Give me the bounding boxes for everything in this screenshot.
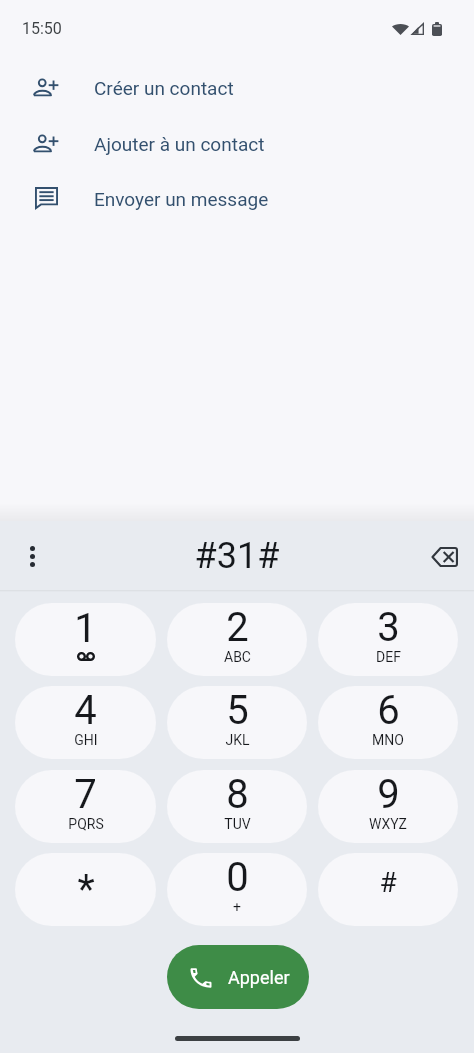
staticText: * [77,866,95,913]
button[interactable]: Effacer [421,534,467,580]
staticText: TUV [224,816,251,832]
staticText: GHI [74,732,98,748]
staticText: WXYZ [369,816,407,832]
staticText: 15:50 [22,19,62,38]
button[interactable]: 6 [318,686,458,759]
button[interactable]: Ajouter à un contact [0,116,474,171]
staticText: MNO [372,732,404,748]
button[interactable]: 1 [15,603,156,676]
button[interactable]: * [15,853,156,926]
staticText: # [379,866,397,899]
button[interactable]: 9 [318,770,458,843]
button[interactable]: Plus d'options [9,533,55,579]
staticText: ABC [224,649,251,665]
button[interactable]: 7 [15,770,156,843]
staticText: 8 [226,771,249,818]
button[interactable]: 5 [167,686,307,759]
staticText: 2 [226,604,249,651]
staticText: 9 [377,771,400,818]
staticText: 0 [226,854,249,901]
staticText: 5 [226,687,249,734]
button[interactable]: 2 [167,603,307,676]
staticText: 1 [74,605,97,652]
staticText: 7 [74,771,97,818]
staticText: 4 [74,687,97,734]
button[interactable]: 8 [167,770,307,843]
button[interactable]: # [318,853,458,926]
staticText: Appeler [228,967,290,988]
button[interactable]: 4 [15,686,156,759]
staticText: Créer un contact [94,77,234,99]
button[interactable]: Créer un contact [0,60,474,115]
staticText: + [233,899,241,915]
staticText: Envoyer un message [94,188,269,210]
button[interactable]: 0 [167,853,307,926]
staticText: PQRS [68,816,104,832]
button[interactable]: Appeler [167,945,309,1009]
button[interactable]: 3 [318,603,458,676]
staticText: 3 [377,604,400,651]
staticText: 6 [377,687,400,734]
staticText: #31# [0,535,474,577]
staticText: Ajouter à un contact [94,133,265,155]
staticText: JKL [225,732,250,748]
staticText: DEF [376,649,401,665]
button[interactable]: Envoyer un message [0,171,474,226]
